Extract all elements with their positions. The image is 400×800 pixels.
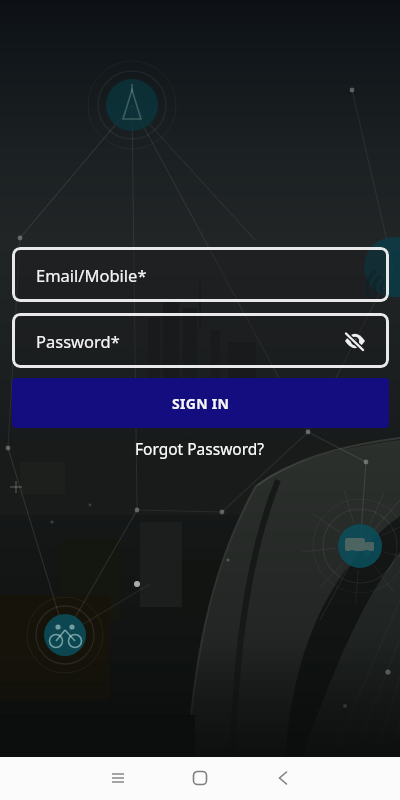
button[interactable]: SIGN IN bbox=[12, 378, 389, 428]
staticText: Forgot Password? bbox=[135, 438, 265, 459]
button[interactable]: Forgot Password? bbox=[135, 438, 265, 459]
button[interactable]: Password* bbox=[12, 313, 389, 368]
button[interactable]: Email/Mobile* bbox=[12, 247, 389, 302]
button[interactable] bbox=[343, 329, 367, 353]
button[interactable] bbox=[103, 763, 133, 793]
staticText: Password* bbox=[36, 330, 120, 352]
button[interactable] bbox=[268, 763, 298, 793]
staticText: Email/Mobile* bbox=[36, 264, 147, 286]
button[interactable] bbox=[185, 763, 215, 793]
staticText: SIGN IN bbox=[172, 394, 230, 413]
